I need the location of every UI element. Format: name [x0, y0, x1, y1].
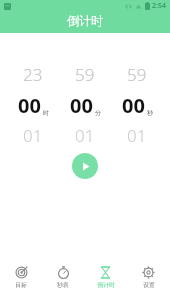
staticText: 00 — [122, 92, 145, 119]
staticText: 秒表 — [57, 281, 69, 289]
staticText: 01 — [23, 124, 43, 147]
staticText: 01 — [75, 124, 95, 147]
button[interactable]: 开始 — [72, 153, 98, 179]
staticText: 23 — [23, 63, 43, 86]
staticText: 目标 — [15, 281, 27, 289]
staticText: 时 — [43, 109, 49, 117]
button[interactable]: 设置 — [127, 259, 170, 295]
staticText: 00 — [70, 92, 93, 119]
button[interactable]: 秒表 — [42, 259, 84, 295]
staticText: 59 — [127, 63, 147, 86]
staticText: 分 — [95, 109, 101, 117]
button[interactable]: 倒计时 — [84, 259, 127, 295]
staticText: 倒计时 — [67, 13, 103, 28]
staticText: 59 — [75, 63, 95, 86]
staticText: 2:54 — [152, 1, 166, 11]
staticText: 设置 — [143, 281, 155, 289]
staticText: 秒 — [147, 109, 153, 117]
staticText: 01 — [127, 124, 147, 147]
staticText: 00 — [18, 92, 41, 119]
staticText: 倒计时 — [97, 281, 115, 289]
button[interactable]: 目标 — [0, 259, 42, 295]
